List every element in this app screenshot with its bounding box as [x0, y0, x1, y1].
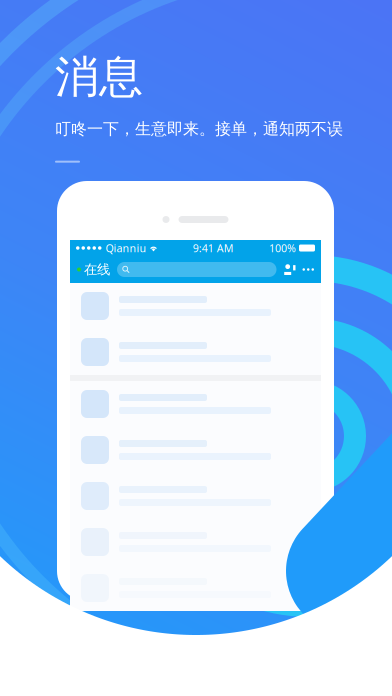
staticText: Qianniu: [105, 241, 146, 255]
staticText: 叮咚一下，生意即来。接单，通知两不误: [55, 119, 343, 139]
staticText: 消息: [55, 50, 143, 104]
staticText: 9:41 AM: [193, 241, 234, 255]
staticText: 在线: [84, 261, 110, 278]
staticText: 100%: [269, 241, 296, 255]
